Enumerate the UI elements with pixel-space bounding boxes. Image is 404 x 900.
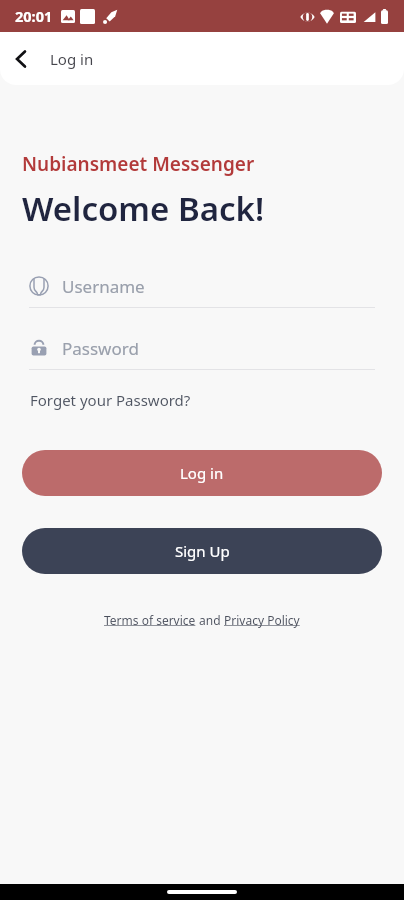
staticText: Username	[62, 275, 145, 297]
button[interactable]: Password	[29, 337, 375, 370]
staticText: Log in	[50, 49, 94, 69]
staticText: Log in	[180, 463, 224, 483]
button[interactable]: Sign Up	[22, 528, 382, 574]
staticText: Nubiansmeet Messenger	[22, 151, 255, 177]
staticText: Sign Up	[175, 541, 230, 561]
button[interactable]: Username	[29, 275, 375, 308]
button[interactable]: Forget your Password?	[30, 390, 191, 410]
button[interactable]: Back	[0, 38, 42, 80]
staticText: Password	[62, 337, 139, 359]
button[interactable]: Log in	[22, 450, 382, 496]
staticText: and	[196, 612, 224, 628]
staticText: 20:01	[15, 6, 53, 26]
button[interactable]: Privacy Policy	[224, 612, 300, 628]
button[interactable]: Terms of service	[104, 612, 196, 628]
staticText: Welcome Back!	[22, 186, 265, 231]
